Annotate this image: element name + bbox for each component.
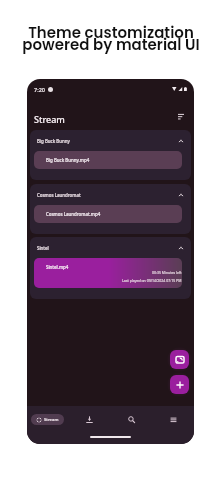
button[interactable]: Sintel.mp4 <box>34 258 182 288</box>
button[interactable]: Big Buck Bunny.mp4 <box>34 151 182 169</box>
button[interactable]: Search <box>110 406 152 432</box>
button[interactable]: Big Buck Bunny <box>30 130 191 180</box>
button[interactable]: Menu <box>152 406 194 432</box>
staticText: 7:20 <box>34 86 45 93</box>
button[interactable]: Sintel <box>30 237 191 299</box>
button[interactable]: Add <box>170 375 189 394</box>
button[interactable]: Sort <box>174 109 188 123</box>
staticText: Cosmos Laundromat <box>37 192 81 198</box>
staticText: Cosmos Laundromat.mp4 <box>46 211 101 217</box>
button[interactable]: Cast to device <box>170 350 189 369</box>
button[interactable]: Stream <box>31 414 64 425</box>
staticText: Stream <box>44 417 59 423</box>
staticText: Stream <box>34 113 65 125</box>
staticText: Sintel <box>37 245 49 251</box>
staticText: Sintel.mp4 <box>46 264 69 270</box>
button[interactable]: Cosmos Laundromat <box>30 184 191 234</box>
staticText: Big Buck Bunny.mp4 <box>46 157 90 163</box>
button[interactable]: Cosmos Laundromat.mp4 <box>34 205 182 223</box>
staticText: Last played on 09/14/2024 07:15 PM <box>122 278 182 283</box>
button[interactable]: Download <box>68 406 110 432</box>
staticText: 00:35 Minutes left <box>152 270 182 275</box>
staticText: Theme customization powered by material … <box>0 22 222 55</box>
staticText: Big Buck Bunny <box>37 138 70 144</box>
